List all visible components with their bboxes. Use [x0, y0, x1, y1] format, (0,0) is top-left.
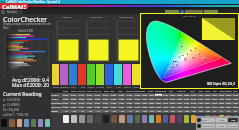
button[interactable] [204, 10, 218, 14]
button[interactable] [149, 115, 154, 123]
staticText: 0.311 [103, 102, 109, 104]
button[interactable] [212, 115, 217, 123]
button[interactable] [79, 115, 85, 123]
staticText: 0.345 [119, 98, 125, 100]
staticText: 0.398 [111, 102, 117, 104]
staticText: 0.329 [63, 98, 69, 100]
staticText: 0.372 [119, 102, 125, 104]
staticText: 25 [47, 74, 50, 77]
staticText: RGB Triplet: 255, 255, 0 [207, 82, 236, 86]
staticText: Mod Red [169, 90, 176, 93]
staticText: 17.5 [178, 110, 182, 112]
staticText: 0.331 [79, 106, 85, 108]
staticText: 0.127 [198, 106, 204, 108]
button[interactable] [219, 115, 224, 123]
staticText: x [24, 4, 26, 8]
staticText: 0.202 [177, 98, 183, 100]
button[interactable] [135, 115, 140, 123]
button[interactable] [31, 119, 36, 127]
staticText: 1.4 [81, 110, 84, 112]
staticText: Cyan [116, 86, 121, 89]
button[interactable] [127, 115, 133, 123]
button[interactable] [45, 119, 50, 127]
staticText: 0.350 [111, 98, 117, 100]
button[interactable] [9, 119, 15, 127]
button[interactable]: Read Continuous [202, 118, 215, 122]
staticText: Foliage [134, 90, 141, 93]
button[interactable] [163, 115, 168, 123]
button[interactable]: Record [197, 118, 201, 122]
button[interactable] [198, 115, 203, 123]
staticText: 0.326 [95, 106, 101, 108]
staticText: 0.548 [212, 102, 218, 104]
staticText: 0.306 [170, 98, 176, 100]
staticText: Blue Flwr [141, 90, 148, 93]
staticText: 16.1 [171, 110, 175, 112]
staticText: 15 [29, 74, 32, 77]
button[interactable] [205, 115, 210, 123]
button[interactable]: Format [228, 124, 238, 128]
button[interactable] [63, 115, 69, 123]
button[interactable] [177, 115, 182, 123]
button[interactable] [165, 10, 179, 14]
staticText: 0.329 [63, 106, 69, 108]
staticText: Display analysis is performed with the X… [3, 22, 54, 32]
staticText: fL: 55.68 [3, 107, 19, 112]
button[interactable] [191, 115, 196, 123]
staticText: 0.250 [233, 106, 239, 108]
staticText: 0.175 [163, 98, 169, 100]
button[interactable] [17, 119, 22, 127]
staticText: 0.9 [73, 110, 76, 112]
button[interactable] [180, 10, 184, 14]
staticText: 0.196 [233, 94, 239, 96]
button[interactable]: Target [216, 118, 227, 122]
staticText: Yellow [219, 90, 225, 93]
staticText: Magenta [225, 90, 232, 93]
button[interactable] [71, 115, 77, 123]
staticText: 0.314 [79, 102, 85, 104]
staticText: 1.2 [65, 110, 68, 112]
staticText: Luminance [90, 15, 103, 18]
button[interactable] [233, 115, 238, 123]
button[interactable]: Auto [228, 118, 238, 122]
staticText: 0.474 [205, 106, 211, 108]
staticText: 0.262 [142, 102, 148, 104]
staticText: Gray 8 [71, 90, 77, 93]
staticText: 0.422 [135, 98, 141, 100]
staticText: 0.249 [127, 106, 133, 108]
button[interactable]: Session [6, 10, 22, 14]
button[interactable] [170, 115, 175, 123]
button[interactable]: Stop [197, 124, 201, 128]
button[interactable] [156, 115, 161, 123]
staticText: 7.1 [129, 110, 132, 112]
button[interactable] [142, 115, 147, 123]
staticText: 0.224 [226, 98, 232, 100]
staticText: Red [81, 86, 85, 89]
button[interactable] [24, 119, 29, 127]
button[interactable] [226, 115, 231, 123]
staticText: 0.313 [71, 94, 77, 96]
staticText: Blue [107, 86, 112, 89]
button[interactable] [111, 115, 117, 123]
staticText: 0.313 [63, 102, 69, 104]
staticText: 0.348 [111, 106, 117, 108]
staticText: White [63, 90, 69, 93]
staticText: 0.330 [71, 106, 77, 108]
button[interactable] [184, 115, 189, 123]
staticText: 0.313 [103, 94, 109, 96]
staticText: 0.327 [87, 106, 93, 108]
button[interactable]: Read Series [202, 124, 215, 128]
button[interactable] [119, 115, 125, 123]
staticText: 0.466 [219, 106, 225, 108]
button[interactable] [185, 10, 203, 14]
staticText: CIE 1931 xy [183, 14, 196, 17]
button[interactable] [87, 115, 93, 123]
staticText: Target x [51, 94, 59, 97]
button[interactable]: Clear [216, 124, 227, 128]
staticText: Yellow [133, 86, 140, 89]
button[interactable] [38, 119, 43, 127]
